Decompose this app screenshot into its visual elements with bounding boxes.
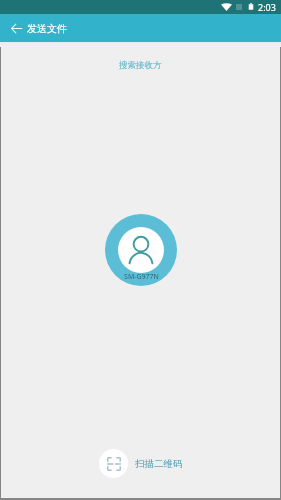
button[interactable]: 搜索接收方 [111,58,170,73]
staticText: 扫描二维码 [135,458,183,470]
staticText: 发送文件 [27,22,67,35]
button[interactable]: 扫描二维码 [99,449,183,478]
staticText: 2:03 [258,1,276,13]
button[interactable]: SM-G977N [105,214,177,286]
button[interactable]: Back [6,18,26,38]
staticText: 搜索接收方 [119,60,162,71]
staticText: SM-G977N [124,272,159,282]
